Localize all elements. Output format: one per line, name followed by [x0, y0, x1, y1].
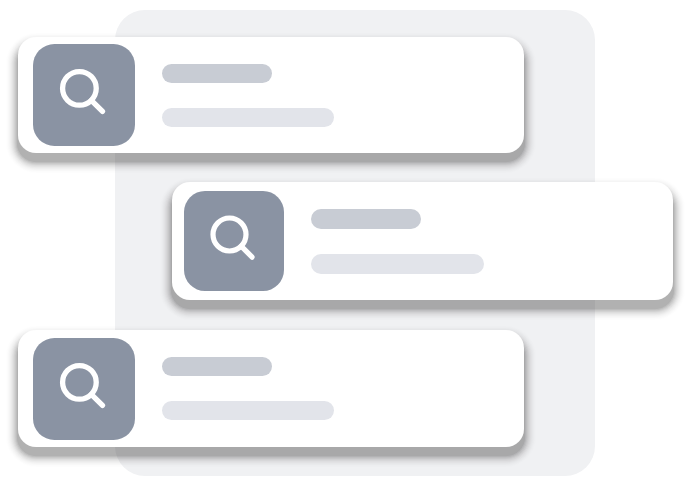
button[interactable]: Search: [18, 37, 524, 153]
other: Search: [33, 338, 135, 440]
button[interactable]: Search: [172, 182, 673, 300]
other: Search: [33, 44, 135, 146]
button[interactable]: Search: [18, 330, 524, 447]
other: Search: [184, 191, 284, 291]
